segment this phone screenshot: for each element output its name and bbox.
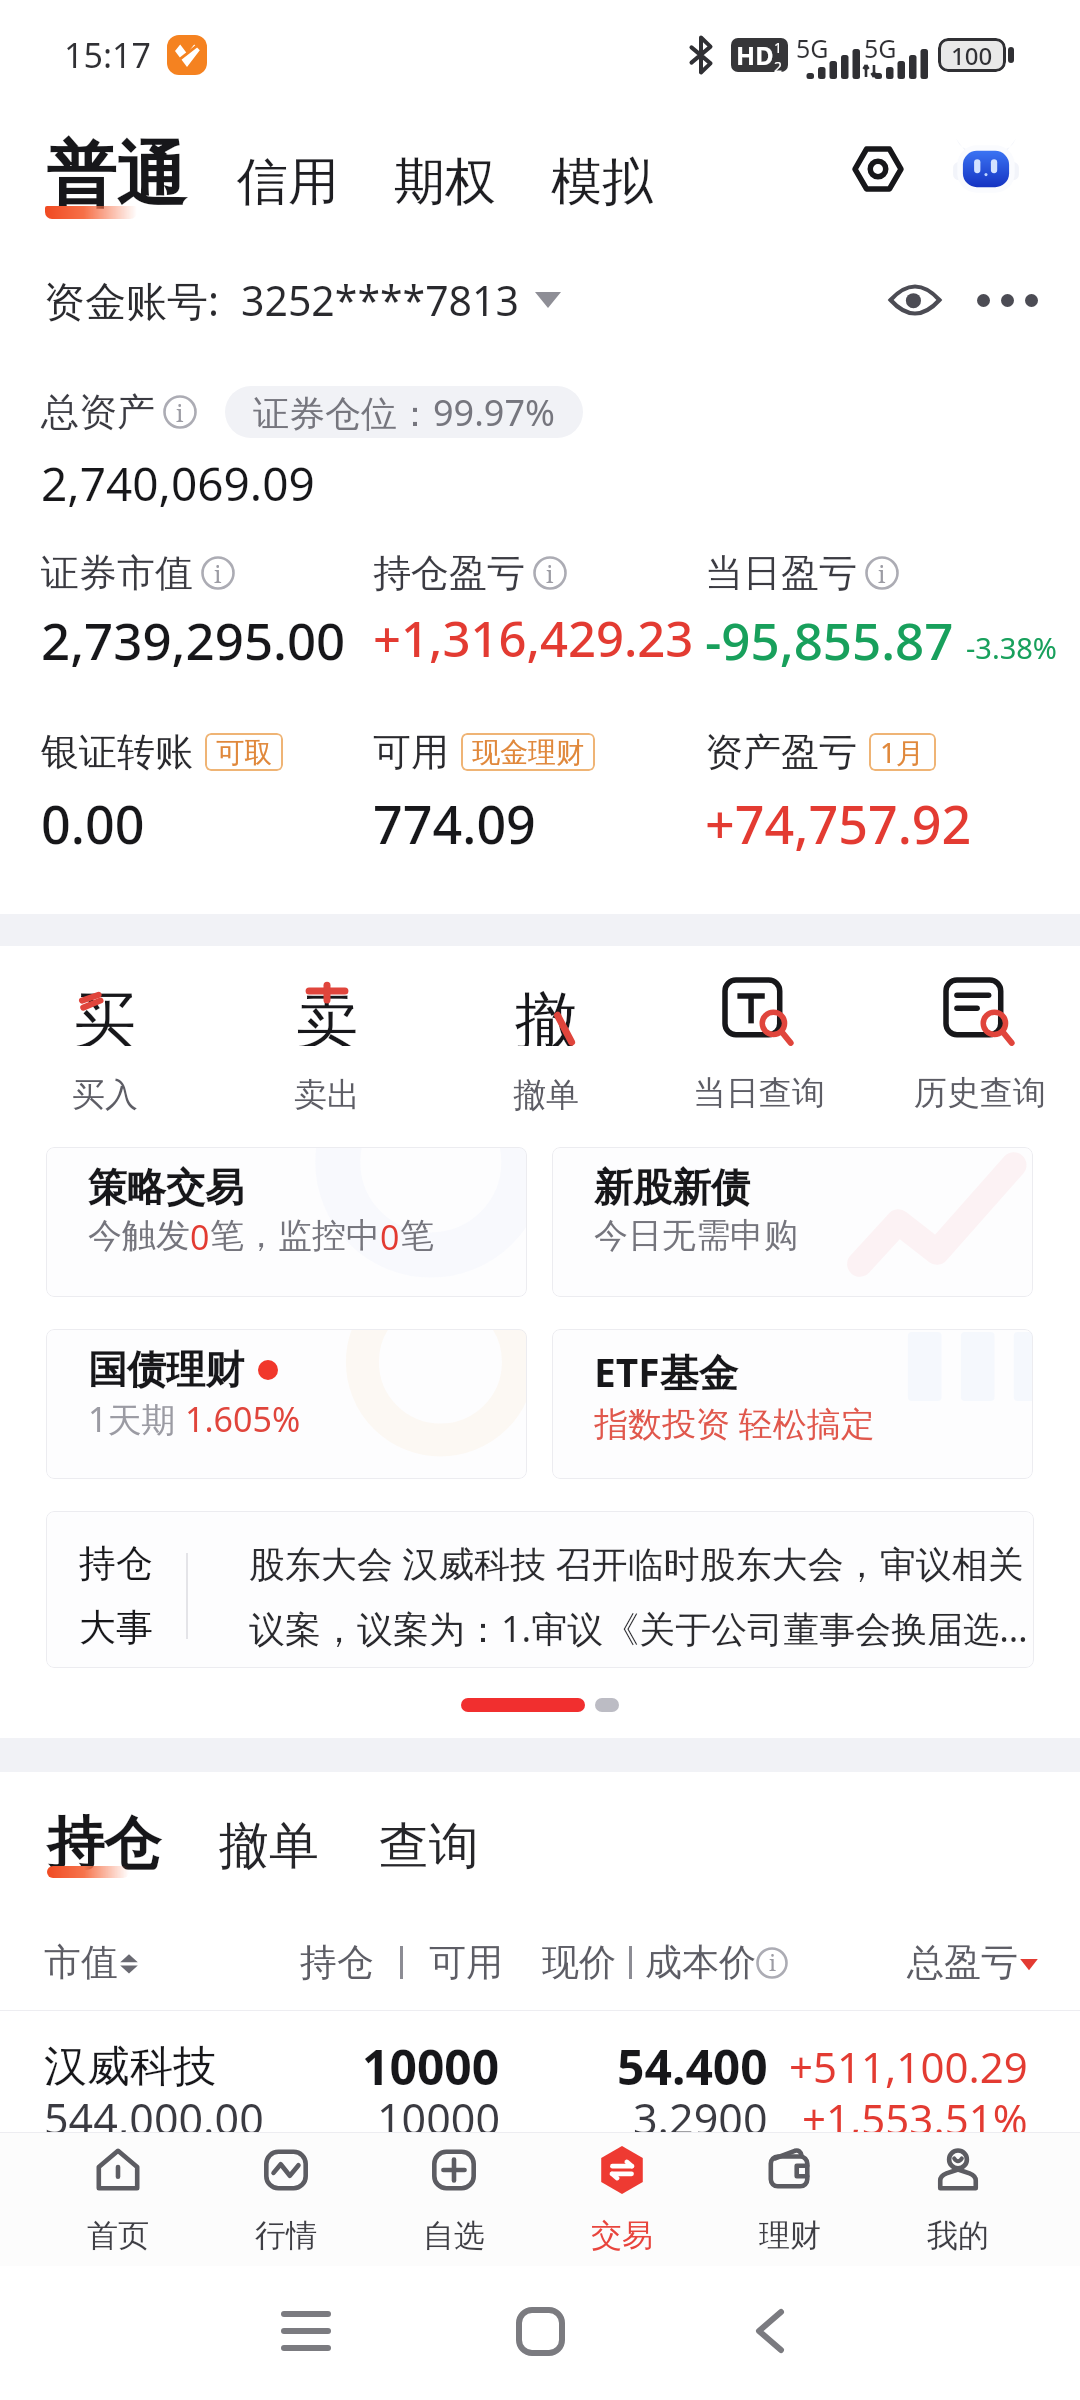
staticText: 1月 [880,733,925,771]
staticText: 自选 [423,2216,485,2255]
button[interactable]: 策略交易 [46,1147,527,1297]
button[interactable]: 资金账号: [40,266,565,334]
button[interactable]: More options [972,265,1042,335]
button[interactable]: 国债理财 [46,1329,527,1479]
staticText: 资金账号: [44,272,219,328]
button[interactable]: 期权 [389,140,501,224]
staticText: 10000 [377,2089,500,2148]
button[interactable]: 自选 [370,2132,538,2266]
button[interactable]: 信用 [232,140,344,224]
staticText: 现金理财 [472,735,584,770]
staticText: 买入 [72,1074,138,1116]
button[interactable]: 现金理财 [461,733,595,771]
staticText: 指数投资 轻松搞定 [594,1400,875,1446]
staticText: 1.605% [185,1396,301,1442]
staticText: 查询 [379,1815,479,1878]
staticText: 544,000.00 [44,2089,264,2148]
staticText: ETF基金 [594,1345,738,1398]
staticText: 笔，监控中 [210,1214,380,1257]
staticText: 卖出 [294,1074,360,1116]
staticText: 10000 [362,2034,500,2099]
staticText: 3252****7813 [241,272,519,328]
staticText: 理财 [759,2216,821,2255]
staticText: 股东大会 汉威科技 召开临时股东大会，审议相关 [249,1539,1024,1588]
button[interactable]: 当日查询 [663,966,855,1114]
button[interactable]: Back [710,2271,830,2391]
staticText: -95,855.87 [705,605,954,674]
staticText: 市值 [44,1939,118,1986]
button[interactable]: 首页 [34,2132,202,2266]
staticText: 54.400 [617,2034,768,2099]
staticText: 当日查询 [693,1072,825,1114]
button[interactable]: 新股新债 [552,1147,1033,1297]
button[interactable]: Recent apps [246,2271,366,2391]
staticText: i [769,1948,776,1978]
staticText: +511,100.29 [789,2038,1028,2095]
staticText: +1,316,429.23 [373,605,694,672]
staticText: 银证转账 [41,728,193,776]
staticText: 首页 [87,2216,149,2255]
button[interactable]: 可取 [205,733,283,771]
staticText: 1 [774,38,783,57]
staticText: 持仓 [79,1540,153,1587]
staticText: 3.2900 [633,2089,768,2148]
button[interactable]: 1月 [869,733,936,771]
staticText: 774.09 [373,788,536,859]
button[interactable]: Settings [838,129,918,209]
staticText: 1天期 [88,1396,185,1442]
button[interactable]: 撤 [450,966,642,1116]
staticText: 现价 [542,1939,616,1986]
button[interactable]: 查询 [379,1815,479,1880]
staticText: 证券仓位：99.97% [253,388,555,437]
button[interactable]: 持仓 [46,1511,1034,1668]
staticText: 资产盈亏 [705,728,857,776]
staticText: 撤单 [219,1815,319,1878]
staticText: 交易 [591,2216,653,2255]
staticText: 策略交易 [88,1163,244,1212]
staticText: i [878,558,886,589]
staticText: 卖 [296,982,358,1046]
staticText: 证券市值 [41,549,193,597]
staticText: 总资产 [41,388,155,436]
staticText: 笔 [400,1214,434,1257]
staticText: -3.38% [966,628,1057,667]
staticText: 5G [796,31,829,65]
staticText: 期权 [394,150,496,214]
staticText: 持仓 [300,1939,374,1986]
button[interactable]: 理财 [706,2132,874,2266]
staticText: 15:17 [64,32,151,78]
staticText: 行情 [255,2216,317,2255]
button[interactable]: 持仓 [47,1808,161,1880]
staticText: 大事 [79,1604,153,1651]
button[interactable]: 我的 [874,2132,1042,2266]
staticText: 可取 [216,735,272,770]
button[interactable]: 撤单 [219,1815,319,1880]
staticText: i [214,558,222,589]
staticText: 撤 [515,982,577,1046]
button[interactable]: Home [480,2271,600,2391]
button[interactable]: ETF基金 [552,1329,1033,1479]
staticText: i [546,558,554,589]
staticText: 成本价 [645,1939,756,1986]
button[interactable]: 买 [9,966,201,1116]
button[interactable]: AI assistant [946,129,1026,209]
staticText: 今触发 [88,1214,190,1257]
button[interactable]: Show amounts [880,265,950,335]
staticText: 0 [380,1214,400,1260]
staticText: HD [736,38,774,72]
button[interactable]: 行情 [202,2132,370,2266]
staticText: 历史查询 [914,1072,1046,1114]
staticText: 持仓盈亏 [373,549,525,597]
button[interactable]: 卖 [231,966,423,1116]
staticText: 持仓 [47,1808,161,1880]
staticText: 0 [190,1214,210,1260]
button[interactable]: 交易 [538,2132,706,2266]
button[interactable]: 普通 [40,128,192,224]
staticText: 普通 [46,132,186,220]
button[interactable]: 历史查询 [884,966,1076,1114]
button[interactable]: 证券仓位：99.97% [225,386,583,438]
staticText: 国债理财 [88,1345,244,1394]
button[interactable]: 汉威科技 [0,2011,1080,2142]
staticText: 2 [774,57,783,72]
button[interactable]: 模拟 [546,140,658,224]
